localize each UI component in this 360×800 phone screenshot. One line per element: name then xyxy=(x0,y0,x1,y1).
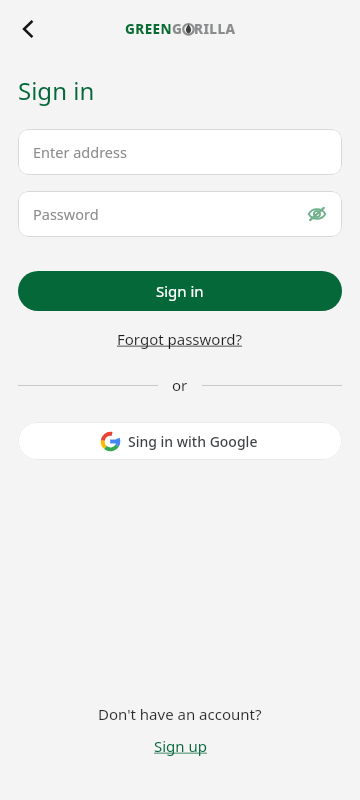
staticText: Forgot password? xyxy=(117,329,243,349)
button[interactable]: Sing in with Google xyxy=(18,422,342,460)
staticText: RILLA xyxy=(194,20,236,38)
staticText: Sign in xyxy=(18,74,95,107)
staticText: Sign up xyxy=(154,736,207,756)
button[interactable]: Show password xyxy=(300,197,334,231)
button[interactable]: Back xyxy=(6,7,50,51)
button[interactable]: Password xyxy=(18,191,342,237)
staticText: Sing in with Google xyxy=(128,432,258,451)
staticText: Don't have an account? xyxy=(98,704,262,724)
button[interactable]: Sign up xyxy=(146,734,215,758)
staticText: G xyxy=(172,20,183,38)
button[interactable]: Enter address xyxy=(18,129,342,175)
button[interactable]: Forgot password? xyxy=(109,327,251,351)
staticText: GREEN xyxy=(125,20,172,38)
staticText: Password xyxy=(33,204,99,224)
button[interactable]: Sign in xyxy=(18,271,342,311)
staticText: Enter address xyxy=(33,142,127,162)
staticText: Sign in xyxy=(156,281,204,301)
staticText: or xyxy=(172,375,188,395)
